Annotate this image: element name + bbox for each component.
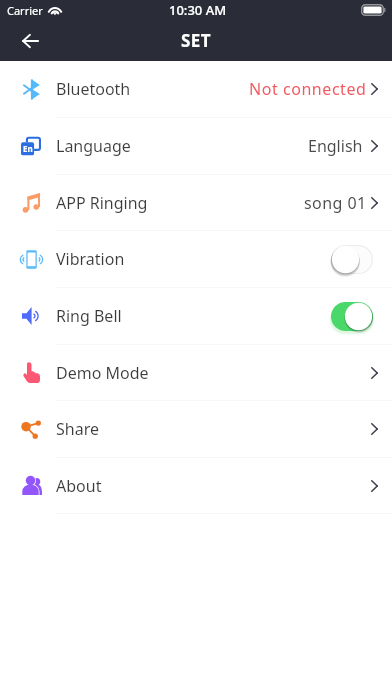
button[interactable]: Demo Mode [0, 345, 392, 401]
button[interactable] [331, 302, 373, 331]
staticText: APP Ringing [56, 192, 148, 214]
staticText: Ring Bell [56, 305, 122, 327]
button[interactable]: Back [11, 22, 49, 60]
button[interactable] [331, 245, 373, 274]
staticText: Vibration [56, 248, 125, 270]
button[interactable]: Share [0, 401, 392, 458]
staticText: Carrier [7, 3, 43, 18]
staticText: SET [181, 29, 211, 52]
staticText: En [23, 143, 33, 154]
staticText: Share [56, 418, 99, 440]
staticText: English [308, 135, 363, 157]
button[interactable]: Vibration [0, 231, 392, 288]
staticText: Bluetooth [56, 78, 131, 100]
staticText: Language [56, 135, 131, 157]
staticText: Demo Mode [56, 362, 149, 384]
staticText: song 01 [304, 192, 367, 214]
button[interactable]: En [0, 118, 392, 175]
button[interactable]: Bluetooth [0, 61, 392, 118]
button[interactable]: About [0, 458, 392, 514]
button[interactable]: Ring Bell [0, 288, 392, 345]
staticText: Not connected [249, 78, 367, 100]
button[interactable]: APP Ringing [0, 175, 392, 231]
staticText: About [56, 475, 102, 497]
staticText: 10:30 AM [169, 1, 227, 19]
